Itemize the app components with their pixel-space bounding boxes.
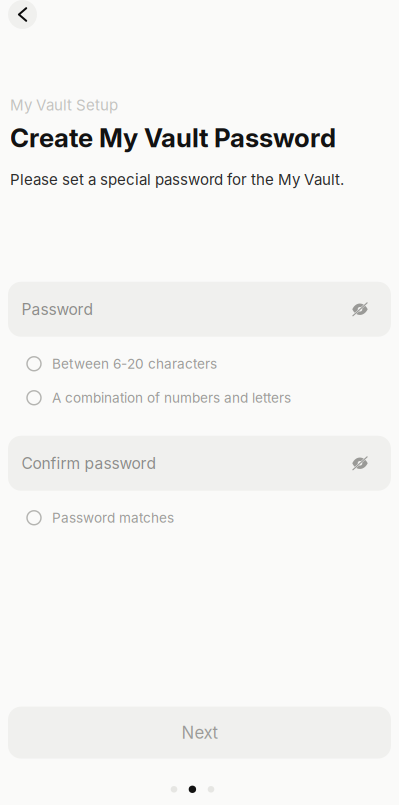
staticText: Next [181, 722, 217, 743]
button[interactable]: Show password [343, 292, 377, 326]
staticText: Password matches [52, 509, 174, 526]
staticText: Create My Vault Password [10, 122, 336, 153]
button[interactable]: Next [8, 707, 391, 759]
staticText: Between 6-20 characters [52, 355, 217, 372]
staticText: Please set a special password for the My… [10, 170, 344, 189]
staticText: Confirm password [21, 454, 156, 473]
staticText: A combination of numbers and letters [52, 389, 291, 406]
staticText: My Vault Setup [10, 96, 118, 114]
button[interactable]: Back [8, 0, 37, 29]
button[interactable]: Show password [343, 446, 377, 480]
staticText: Password [21, 300, 93, 319]
